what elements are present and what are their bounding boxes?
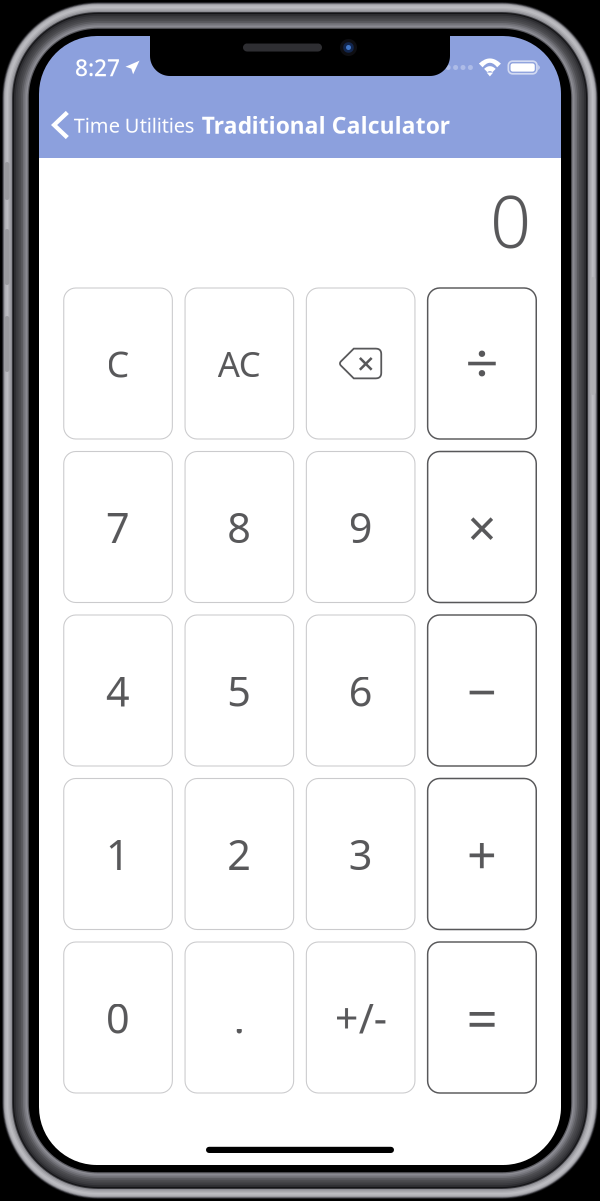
button[interactable]: Multiply xyxy=(428,451,536,602)
staticText: . xyxy=(234,990,245,1045)
staticText: 0 xyxy=(106,990,130,1045)
staticText: AC xyxy=(218,340,261,386)
staticText: C xyxy=(106,340,129,387)
staticText: 1 xyxy=(106,827,130,881)
staticText: = xyxy=(466,981,497,1054)
button[interactable]: Equals xyxy=(428,942,536,1093)
staticText: − xyxy=(467,656,497,725)
staticText: 3 xyxy=(349,827,373,881)
button[interactable]: 1 xyxy=(64,778,172,929)
staticText: 8 xyxy=(227,500,251,554)
staticText: +/- xyxy=(335,990,387,1045)
staticText: 7 xyxy=(106,500,130,554)
button[interactable]: Backspace xyxy=(306,288,415,439)
button[interactable]: 8 xyxy=(185,451,294,602)
button[interactable]: 7 xyxy=(64,451,172,602)
staticText: 5 xyxy=(227,663,251,718)
button[interactable]: Plus minus xyxy=(306,942,415,1093)
staticText: 0 xyxy=(490,172,531,268)
staticText: 6 xyxy=(349,663,373,718)
button[interactable]: 6 xyxy=(306,615,415,766)
button[interactable]: 3 xyxy=(306,778,415,929)
staticText: Time Utilities xyxy=(74,112,195,138)
button[interactable]: 9 xyxy=(306,451,415,602)
staticText: 4 xyxy=(106,663,130,718)
button[interactable]: Minus xyxy=(428,615,536,766)
button[interactable]: Time Utilities xyxy=(39,103,199,147)
button[interactable]: 2 xyxy=(185,778,294,929)
staticText: + xyxy=(467,819,497,889)
button[interactable]: Plus xyxy=(428,778,536,929)
staticText: 8:27 xyxy=(75,52,120,82)
staticText: 2 xyxy=(227,827,251,881)
staticText: × xyxy=(467,493,496,561)
button[interactable]: 5 xyxy=(185,615,294,766)
button[interactable]: Divide xyxy=(428,288,536,439)
button[interactable]: All clear xyxy=(185,288,294,439)
button[interactable]: 4 xyxy=(64,615,172,766)
button[interactable]: 0 xyxy=(64,942,172,1093)
staticText: 9 xyxy=(349,500,373,554)
button[interactable]: Clear xyxy=(64,288,172,439)
staticText: Traditional Calculator xyxy=(202,110,450,140)
button[interactable]: Decimal point xyxy=(185,942,294,1093)
